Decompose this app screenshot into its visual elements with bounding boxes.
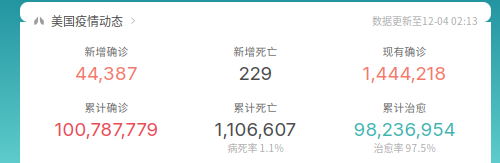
staticText: 现有确诊: [382, 43, 426, 59]
staticText: 98,236,954: [353, 118, 455, 140]
staticText: 累计确诊: [84, 99, 128, 115]
staticText: 新增确诊: [84, 43, 128, 59]
staticText: 累计治愈: [382, 99, 426, 115]
staticText: 数据更新至12-04 02:13: [372, 13, 478, 28]
staticText: 累计死亡: [233, 99, 277, 115]
staticText: 病死率 1.1%: [227, 140, 283, 155]
staticText: 100,787,779: [54, 118, 158, 140]
staticText: 44,387: [75, 62, 138, 84]
staticText: 治愈率 97.5%: [373, 140, 435, 155]
staticText: 美国疫情动态: [51, 12, 123, 29]
staticText: 1,444,218: [362, 62, 446, 84]
button[interactable]: 美国疫情动态: [34, 12, 136, 29]
staticText: 新增死亡: [233, 43, 277, 59]
staticText: 229: [238, 62, 272, 84]
staticText: 1,106,607: [214, 118, 296, 140]
